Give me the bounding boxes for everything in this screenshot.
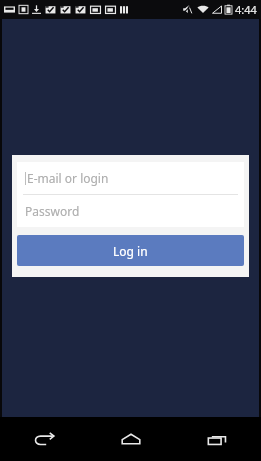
button[interactable]: Back xyxy=(0,417,87,461)
staticText: 4:44 xyxy=(235,2,257,17)
button[interactable]: E-mail or login xyxy=(17,162,244,194)
staticText: Password xyxy=(25,203,80,219)
button[interactable]: Log in xyxy=(17,235,244,266)
button[interactable]: Recent apps xyxy=(174,417,261,461)
button[interactable]: Home xyxy=(87,417,174,461)
staticText: E-mail or login xyxy=(27,170,109,186)
button[interactable]: Password xyxy=(17,195,244,227)
staticText: Log in xyxy=(113,243,148,259)
